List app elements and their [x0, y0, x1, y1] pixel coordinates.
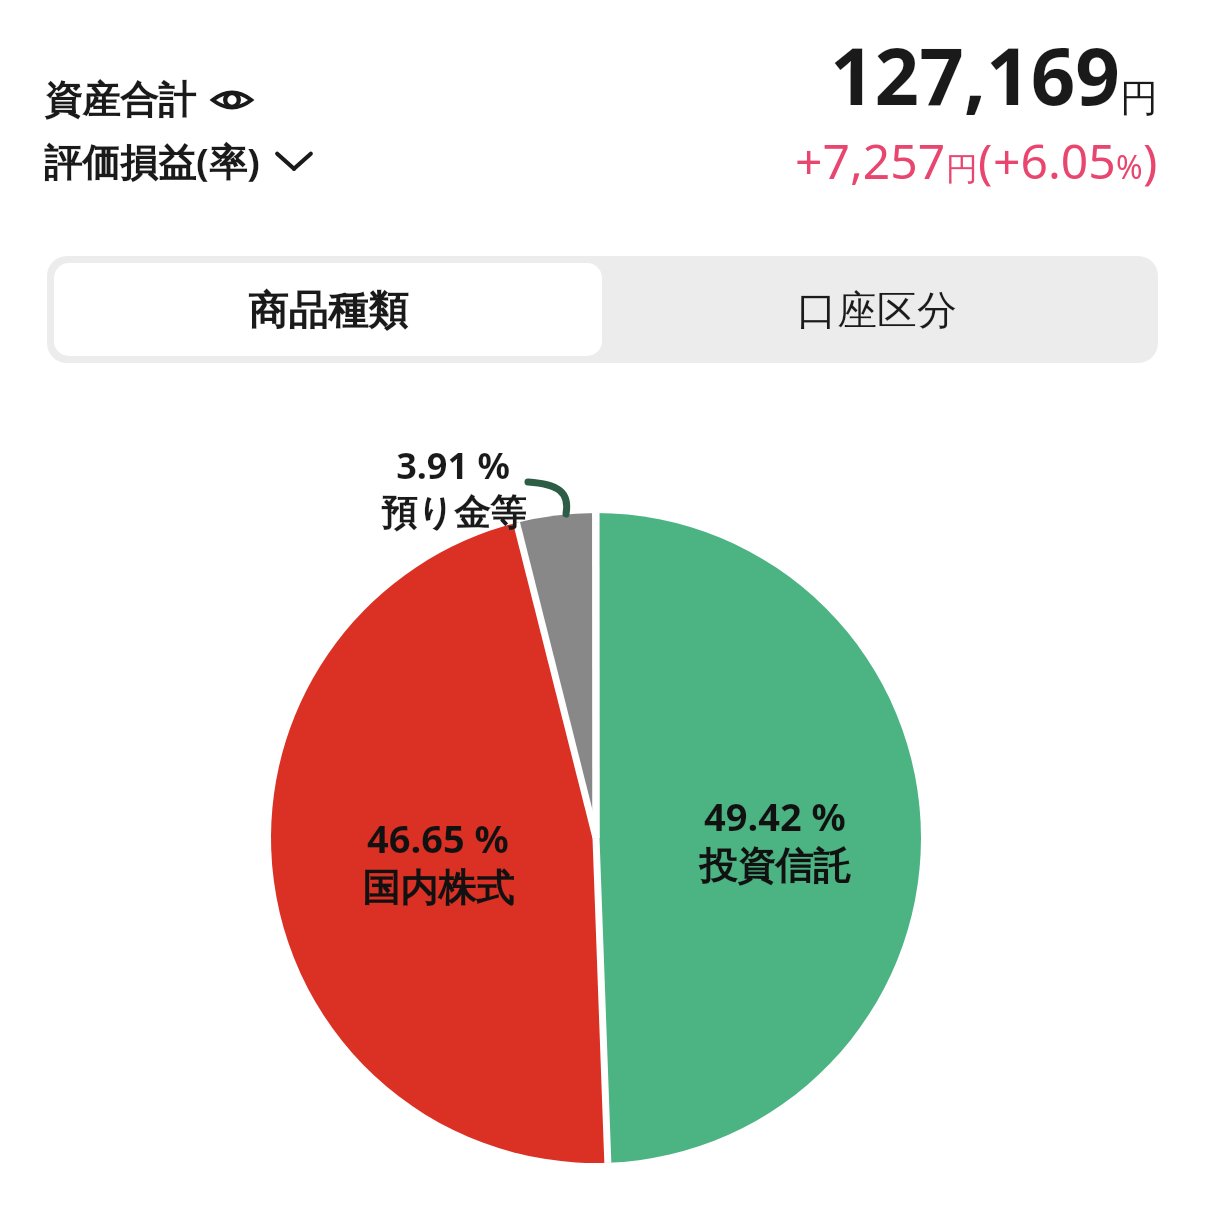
staticText: 円 — [1120, 74, 1158, 122]
staticText: % — [1116, 145, 1143, 189]
other: 表示切替 — [210, 83, 254, 117]
staticText: ( — [978, 128, 993, 193]
staticText: 預り金等 — [381, 490, 526, 535]
staticText: 評価損益(率) — [44, 135, 260, 187]
staticText: +7,257 — [795, 128, 946, 193]
other: 展開 — [274, 148, 314, 174]
staticText: +6.05 — [993, 128, 1116, 193]
button[interactable]: 評価損益(率) — [44, 131, 314, 191]
staticText: 資産合計 — [44, 76, 196, 124]
staticText: 49.42 % — [704, 790, 846, 842]
staticText: 46.65 % — [367, 812, 509, 864]
staticText: 円 — [946, 149, 978, 189]
staticText: 口座区分 — [797, 285, 957, 335]
button[interactable]: 口座区分 — [602, 263, 1151, 356]
staticText: 3.91 % — [396, 441, 510, 490]
staticText: 127,169 — [830, 22, 1120, 128]
button[interactable]: 商品種類 — [54, 263, 602, 356]
staticText: 投資信託 — [699, 842, 851, 890]
staticText: ) — [1143, 128, 1158, 193]
staticText: 商品種類 — [248, 285, 408, 335]
button[interactable]: 資産合計 — [44, 72, 254, 128]
staticText: 国内株式 — [362, 864, 514, 912]
other: 資産構成円グラフ — [0, 0, 1206, 1206]
